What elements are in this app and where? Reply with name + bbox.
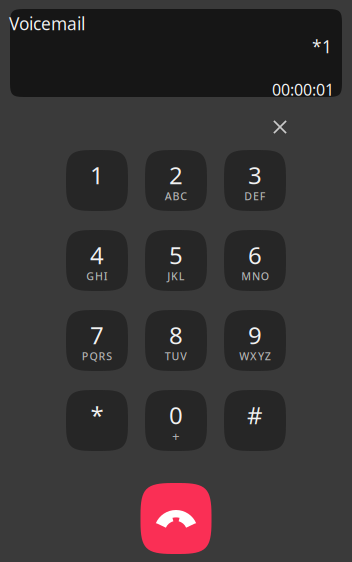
button[interactable]: 0 — [145, 390, 207, 451]
staticText: 5 — [169, 239, 183, 271]
staticText: 4 — [90, 239, 104, 271]
staticText: 2 — [169, 159, 183, 191]
staticText: 00:00:01 — [272, 79, 334, 100]
button[interactable]: 3 — [224, 150, 286, 211]
button[interactable]: * — [66, 390, 128, 451]
button[interactable]: 4 — [66, 230, 128, 291]
staticText: GHI — [86, 269, 108, 283]
staticText: DEF — [244, 189, 266, 203]
staticText: + — [172, 427, 180, 445]
button[interactable]: End call — [140, 483, 211, 554]
staticText: * — [90, 399, 103, 431]
staticText: 6 — [248, 239, 262, 271]
staticText: 7 — [90, 319, 104, 351]
staticText: JKL — [167, 269, 185, 283]
button[interactable]: 2 — [145, 150, 207, 211]
button[interactable]: 9 — [224, 310, 286, 371]
staticText: *1 — [312, 35, 332, 58]
staticText: Voicemail — [9, 12, 85, 35]
staticText: ABC — [165, 189, 187, 203]
button[interactable]: 8 — [145, 310, 207, 371]
button[interactable]: 5 — [145, 230, 207, 291]
staticText: 0 — [169, 399, 183, 431]
button[interactable]: # — [224, 390, 286, 451]
staticText: MNO — [241, 269, 269, 283]
staticText: 8 — [169, 319, 183, 351]
button[interactable]: 7 — [66, 310, 128, 371]
button[interactable]: Hide keypad — [263, 110, 297, 144]
staticText: 3 — [248, 159, 262, 191]
button[interactable]: 6 — [224, 230, 286, 291]
staticText: PQRS — [82, 349, 112, 363]
staticText: TUV — [165, 349, 187, 363]
staticText: 9 — [248, 319, 262, 351]
button[interactable]: 1 — [66, 150, 128, 211]
staticText: WXYZ — [239, 349, 271, 363]
staticText: 1 — [90, 159, 104, 191]
staticText: # — [247, 399, 263, 431]
